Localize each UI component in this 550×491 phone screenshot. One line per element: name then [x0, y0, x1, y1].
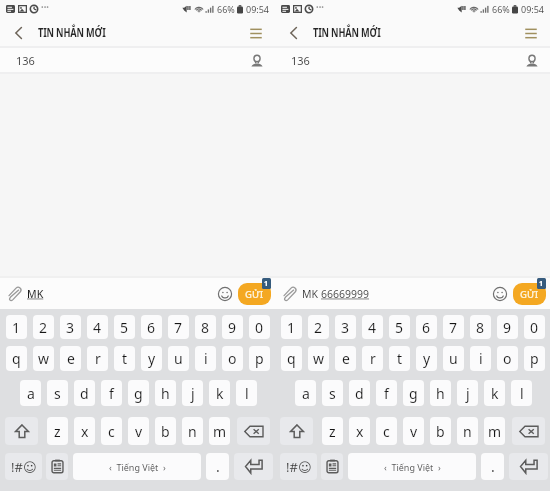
button[interactable]: Symbols [5, 453, 42, 480]
button[interactable]: 9 [222, 315, 243, 339]
button[interactable]: m [484, 417, 505, 445]
button[interactable]: b [430, 417, 451, 445]
button[interactable]: w [33, 346, 54, 371]
button[interactable]: n [182, 417, 203, 445]
button[interactable]: x [349, 417, 370, 445]
button[interactable]: o [497, 346, 518, 371]
button[interactable]: c [376, 417, 397, 445]
button[interactable]: l [236, 380, 257, 406]
button[interactable]: Enter [234, 453, 273, 480]
button[interactable]: g [403, 380, 424, 406]
button[interactable]: 4 [87, 315, 108, 339]
button[interactable]: Delete [512, 417, 545, 445]
button[interactable]: r [87, 346, 108, 371]
button[interactable]: . [481, 453, 504, 480]
button[interactable]: q [6, 346, 27, 371]
button[interactable]: n [457, 417, 478, 445]
button[interactable]: f [101, 380, 122, 406]
button[interactable]: b [155, 417, 176, 445]
button[interactable]: i [195, 346, 216, 371]
button[interactable]: 4 [362, 315, 383, 339]
button[interactable]: r [362, 346, 383, 371]
button[interactable]: Shift [280, 417, 313, 445]
button[interactable]: i [470, 346, 491, 371]
button[interactable]: z [322, 417, 343, 445]
button[interactable]: Symbols [280, 453, 317, 480]
button[interactable]: 8 [470, 315, 491, 339]
button[interactable]: Space [348, 453, 476, 480]
button[interactable]: m [209, 417, 230, 445]
button[interactable]: k [209, 380, 230, 406]
button[interactable]: w [308, 346, 329, 371]
button[interactable]: Contacts [247, 50, 267, 70]
button[interactable]: j [457, 380, 478, 406]
button[interactable]: Clipboard [46, 453, 68, 480]
button[interactable]: d [74, 380, 95, 406]
button[interactable]: Emoji [215, 284, 235, 304]
button[interactable]: 6 [416, 315, 437, 339]
button[interactable]: h [430, 380, 451, 406]
button[interactable]: e [335, 346, 356, 371]
button[interactable]: Back [0, 19, 36, 46]
button[interactable]: Attach [278, 283, 300, 305]
button[interactable]: j [182, 380, 203, 406]
button[interactable]: 136 [275, 48, 550, 72]
button[interactable]: Clipboard [321, 453, 343, 480]
button[interactable]: Menu [246, 23, 266, 43]
button[interactable]: e [60, 346, 81, 371]
button[interactable]: q [281, 346, 302, 371]
button[interactable]: 6 [141, 315, 162, 339]
button[interactable]: g [128, 380, 149, 406]
button[interactable]: o [222, 346, 243, 371]
button[interactable]: k [484, 380, 505, 406]
button[interactable]: a [295, 380, 316, 406]
button[interactable]: v [403, 417, 424, 445]
button[interactable]: Space [73, 453, 201, 480]
button[interactable]: Back [275, 19, 311, 46]
button[interactable]: 3 [60, 315, 81, 339]
button[interactable]: c [101, 417, 122, 445]
button[interactable]: 0 [249, 315, 270, 339]
button[interactable]: 136 [0, 48, 275, 72]
button[interactable]: 7 [443, 315, 464, 339]
button[interactable]: f [376, 380, 397, 406]
button[interactable]: u [443, 346, 464, 371]
button[interactable]: p [249, 346, 270, 371]
button[interactable]: d [349, 380, 370, 406]
button[interactable]: v [128, 417, 149, 445]
button[interactable]: 1 [6, 315, 27, 339]
button[interactable]: Attach [3, 283, 25, 305]
button[interactable]: 0 [524, 315, 545, 339]
button[interactable]: 7 [168, 315, 189, 339]
button[interactable]: x [74, 417, 95, 445]
button[interactable]: 8 [195, 315, 216, 339]
button[interactable]: 9 [497, 315, 518, 339]
button[interactable]: Menu [521, 23, 541, 43]
button[interactable]: t [389, 346, 410, 371]
button[interactable]: Emoji [490, 284, 510, 304]
button[interactable]: p [524, 346, 545, 371]
button[interactable]: 2 [33, 315, 54, 339]
button[interactable]: Shift [5, 417, 38, 445]
button[interactable]: GỬI [513, 283, 546, 305]
button[interactable]: 5 [389, 315, 410, 339]
button[interactable]: y [141, 346, 162, 371]
button[interactable]: t [114, 346, 135, 371]
button[interactable]: h [155, 380, 176, 406]
button[interactable]: 1 [281, 315, 302, 339]
button[interactable]: GỬI [238, 283, 271, 305]
button[interactable]: u [168, 346, 189, 371]
button[interactable]: . [206, 453, 229, 480]
button[interactable]: z [47, 417, 68, 445]
button[interactable]: y [416, 346, 437, 371]
button[interactable]: a [20, 380, 41, 406]
button[interactable]: Contacts [522, 50, 542, 70]
button[interactable]: Enter [509, 453, 548, 480]
button[interactable]: 2 [308, 315, 329, 339]
button[interactable]: s [47, 380, 68, 406]
button[interactable]: s [322, 380, 343, 406]
button[interactable]: Delete [237, 417, 270, 445]
button[interactable]: l [511, 380, 532, 406]
button[interactable]: 5 [114, 315, 135, 339]
button[interactable]: 3 [335, 315, 356, 339]
